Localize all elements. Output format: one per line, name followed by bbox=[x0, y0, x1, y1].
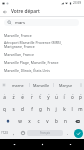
button[interactable]: Maryse bbox=[54, 79, 77, 91]
staticText: Marseille, Illinois, États-Unis bbox=[4, 68, 50, 73]
button[interactable]: t bbox=[36, 91, 44, 103]
button[interactable]: marne bbox=[7, 79, 29, 91]
staticText: i bbox=[63, 94, 65, 100]
button[interactable]: Expand suggestions bbox=[0, 79, 7, 91]
staticText: Marseillan, France bbox=[4, 52, 34, 57]
button[interactable]: Symbols bbox=[0, 127, 9, 139]
button[interactable]: h bbox=[44, 103, 52, 115]
staticText: 7 bbox=[56, 92, 58, 95]
button[interactable]: z bbox=[9, 91, 18, 103]
staticText: 9 bbox=[72, 92, 74, 95]
button[interactable]: Backspace bbox=[70, 115, 84, 127]
staticText: j bbox=[55, 106, 57, 112]
staticText: Aéroport Marseille Provence (MRS), Marig… bbox=[4, 40, 63, 49]
staticText: . bbox=[67, 130, 69, 136]
button[interactable]: u bbox=[52, 91, 60, 103]
button[interactable]: Home bbox=[28, 139, 56, 150]
staticText: 6 bbox=[48, 92, 50, 95]
button[interactable]: Emoji bbox=[18, 127, 27, 139]
staticText: g bbox=[39, 106, 42, 112]
button[interactable]: y bbox=[44, 91, 52, 103]
button[interactable]: w bbox=[15, 115, 25, 127]
staticText: b bbox=[55, 118, 58, 124]
staticText: 2 bbox=[13, 92, 15, 95]
staticText: y bbox=[47, 94, 50, 100]
staticText: 5 bbox=[40, 92, 42, 95]
staticText: 3 bbox=[22, 92, 24, 95]
button[interactable]: n bbox=[61, 115, 70, 127]
staticText: f bbox=[31, 106, 33, 112]
button[interactable]: k bbox=[60, 103, 68, 115]
staticText: c bbox=[37, 118, 40, 124]
button[interactable]: v bbox=[43, 115, 52, 127]
staticText: , bbox=[13, 130, 15, 136]
button[interactable]: g bbox=[36, 103, 44, 115]
staticText: a bbox=[3, 94, 6, 100]
staticText: marne bbox=[12, 83, 24, 88]
staticText: t bbox=[39, 94, 41, 100]
button[interactable]: e bbox=[18, 91, 27, 103]
button[interactable]: s bbox=[9, 103, 18, 115]
button[interactable]: Marseille bbox=[30, 79, 53, 91]
button[interactable]: m bbox=[76, 103, 84, 115]
staticText: ?123 bbox=[1, 131, 8, 135]
button[interactable]: c bbox=[34, 115, 43, 127]
button[interactable]: d bbox=[18, 103, 27, 115]
button[interactable]: Period bbox=[63, 127, 72, 139]
button[interactable]: mars bbox=[4, 19, 79, 26]
staticText: n bbox=[64, 118, 67, 124]
button[interactable]: Recents bbox=[56, 139, 84, 150]
button[interactable]: Back bbox=[0, 139, 28, 150]
staticText: Marseille, France bbox=[4, 33, 32, 38]
button[interactable]: a bbox=[0, 91, 9, 103]
staticText: m bbox=[78, 106, 83, 112]
staticText: Maryse bbox=[59, 83, 73, 88]
button[interactable]: Marseille, France bbox=[0, 31, 84, 39]
staticText: v bbox=[46, 118, 49, 124]
button[interactable]: Français bbox=[27, 130, 63, 136]
button[interactable]: Comma bbox=[9, 127, 18, 139]
staticText: r bbox=[31, 94, 33, 100]
staticText: d bbox=[21, 106, 24, 112]
staticText: s bbox=[12, 106, 15, 112]
staticText: e bbox=[21, 94, 24, 100]
button[interactable]: b bbox=[52, 115, 61, 127]
button[interactable]: o bbox=[68, 91, 76, 103]
button[interactable]: x bbox=[25, 115, 34, 127]
staticText: Français bbox=[40, 131, 51, 135]
button[interactable]: p bbox=[76, 91, 84, 103]
button[interactable]: l bbox=[68, 103, 76, 115]
button[interactable]: i bbox=[60, 91, 68, 103]
staticText: 4 bbox=[31, 92, 33, 95]
button[interactable]: Enter bbox=[72, 127, 84, 139]
staticText: Marseille Plage, Marseille, France bbox=[4, 60, 59, 65]
staticText: 0 bbox=[80, 92, 82, 95]
staticText: o bbox=[71, 94, 74, 100]
button[interactable]: f bbox=[27, 103, 36, 115]
button[interactable]: Marseille Plage, Marseille, France bbox=[0, 58, 84, 66]
button[interactable]: Aéroport Marseille Provence (MRS), Marig… bbox=[0, 39, 84, 50]
staticText: z bbox=[12, 94, 15, 100]
staticText: Votre départ bbox=[11, 8, 40, 15]
button[interactable]: Marseillan, France bbox=[0, 50, 84, 58]
staticText: mars bbox=[15, 20, 25, 26]
staticText: Marseille bbox=[33, 83, 50, 88]
staticText: 23:59 bbox=[73, 1, 82, 5]
staticText: 1 bbox=[4, 92, 6, 95]
staticText: k bbox=[63, 106, 66, 112]
staticText: q bbox=[3, 106, 6, 112]
button[interactable]: q bbox=[0, 103, 9, 115]
button[interactable]: Marseille, Illinois, États-Unis bbox=[0, 66, 84, 74]
button[interactable]: More options bbox=[77, 79, 84, 91]
staticText: x bbox=[28, 118, 31, 124]
button[interactable]: j bbox=[52, 103, 60, 115]
staticText: p bbox=[79, 94, 82, 100]
staticText: w bbox=[18, 118, 22, 124]
button[interactable]: r bbox=[27, 91, 36, 103]
staticText: l bbox=[71, 106, 73, 112]
staticText: u bbox=[55, 94, 58, 100]
staticText: 8 bbox=[64, 92, 66, 95]
button[interactable]: Back bbox=[0, 7, 9, 16]
staticText: h bbox=[47, 106, 50, 112]
button[interactable]: Shift bbox=[0, 115, 15, 127]
